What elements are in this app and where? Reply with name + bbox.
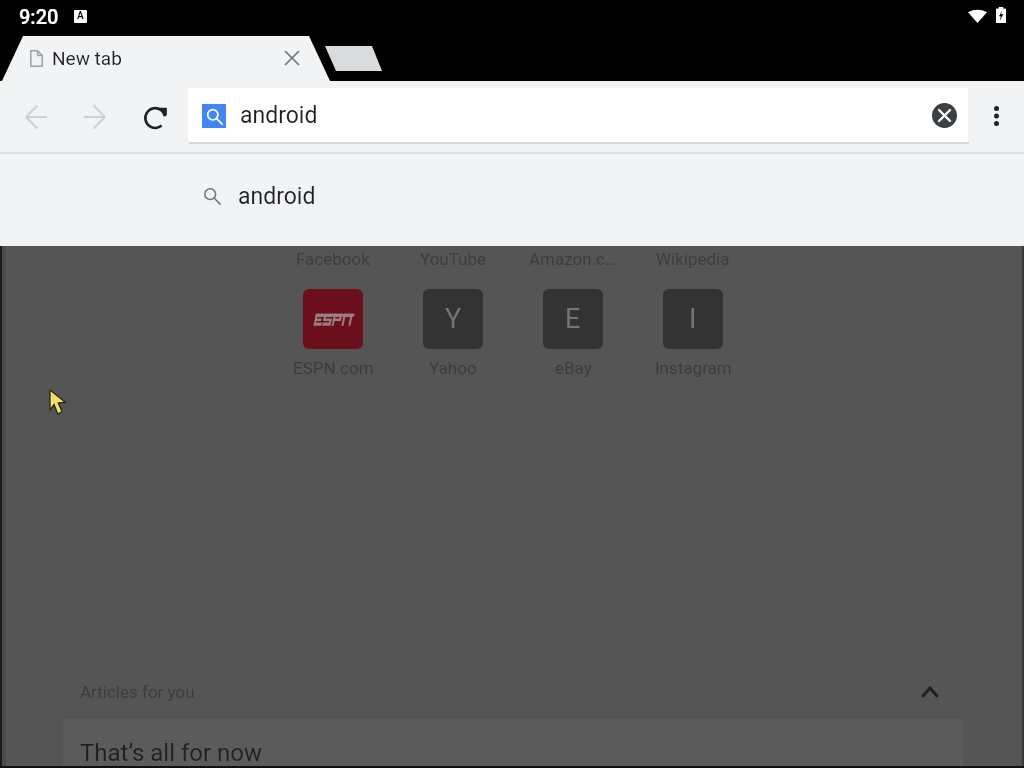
button[interactable]: Back: [12, 93, 60, 141]
button[interactable]: android: [188, 88, 968, 142]
button[interactable]: E: [513, 289, 633, 378]
staticText: android: [240, 102, 318, 129]
staticText: ESPN.com: [293, 358, 374, 378]
staticText: 9:20: [19, 5, 59, 28]
staticText: Articles for you: [80, 682, 195, 702]
button[interactable]: Close tab: [274, 40, 310, 76]
button[interactable]: More options: [972, 92, 1020, 140]
staticText: YouTube: [420, 249, 487, 269]
staticText: A: [77, 10, 84, 22]
staticText: android: [238, 183, 316, 210]
button[interactable]: Collapse section: [912, 674, 948, 710]
staticText: E: [565, 303, 581, 335]
staticText: Facebook: [296, 249, 370, 269]
staticText: eBay: [555, 358, 592, 378]
staticText: That’s all for now: [80, 739, 263, 767]
staticText: Instagram: [655, 358, 732, 378]
button[interactable]: I: [633, 289, 753, 378]
staticText: Yahoo: [429, 358, 477, 378]
button[interactable]: android: [0, 154, 1024, 246]
button[interactable]: Reload: [132, 93, 180, 141]
staticText: I: [689, 303, 697, 335]
button[interactable]: Y: [393, 289, 513, 378]
button[interactable]: Clear text: [932, 103, 957, 128]
staticText: New tab: [52, 47, 122, 69]
staticText: Wikipedia: [656, 249, 730, 269]
button[interactable]: Forward: [71, 93, 119, 141]
button[interactable]: ESPN.com: [273, 289, 393, 378]
staticText: Amazon.c…: [529, 249, 617, 269]
staticText: Y: [445, 303, 462, 335]
